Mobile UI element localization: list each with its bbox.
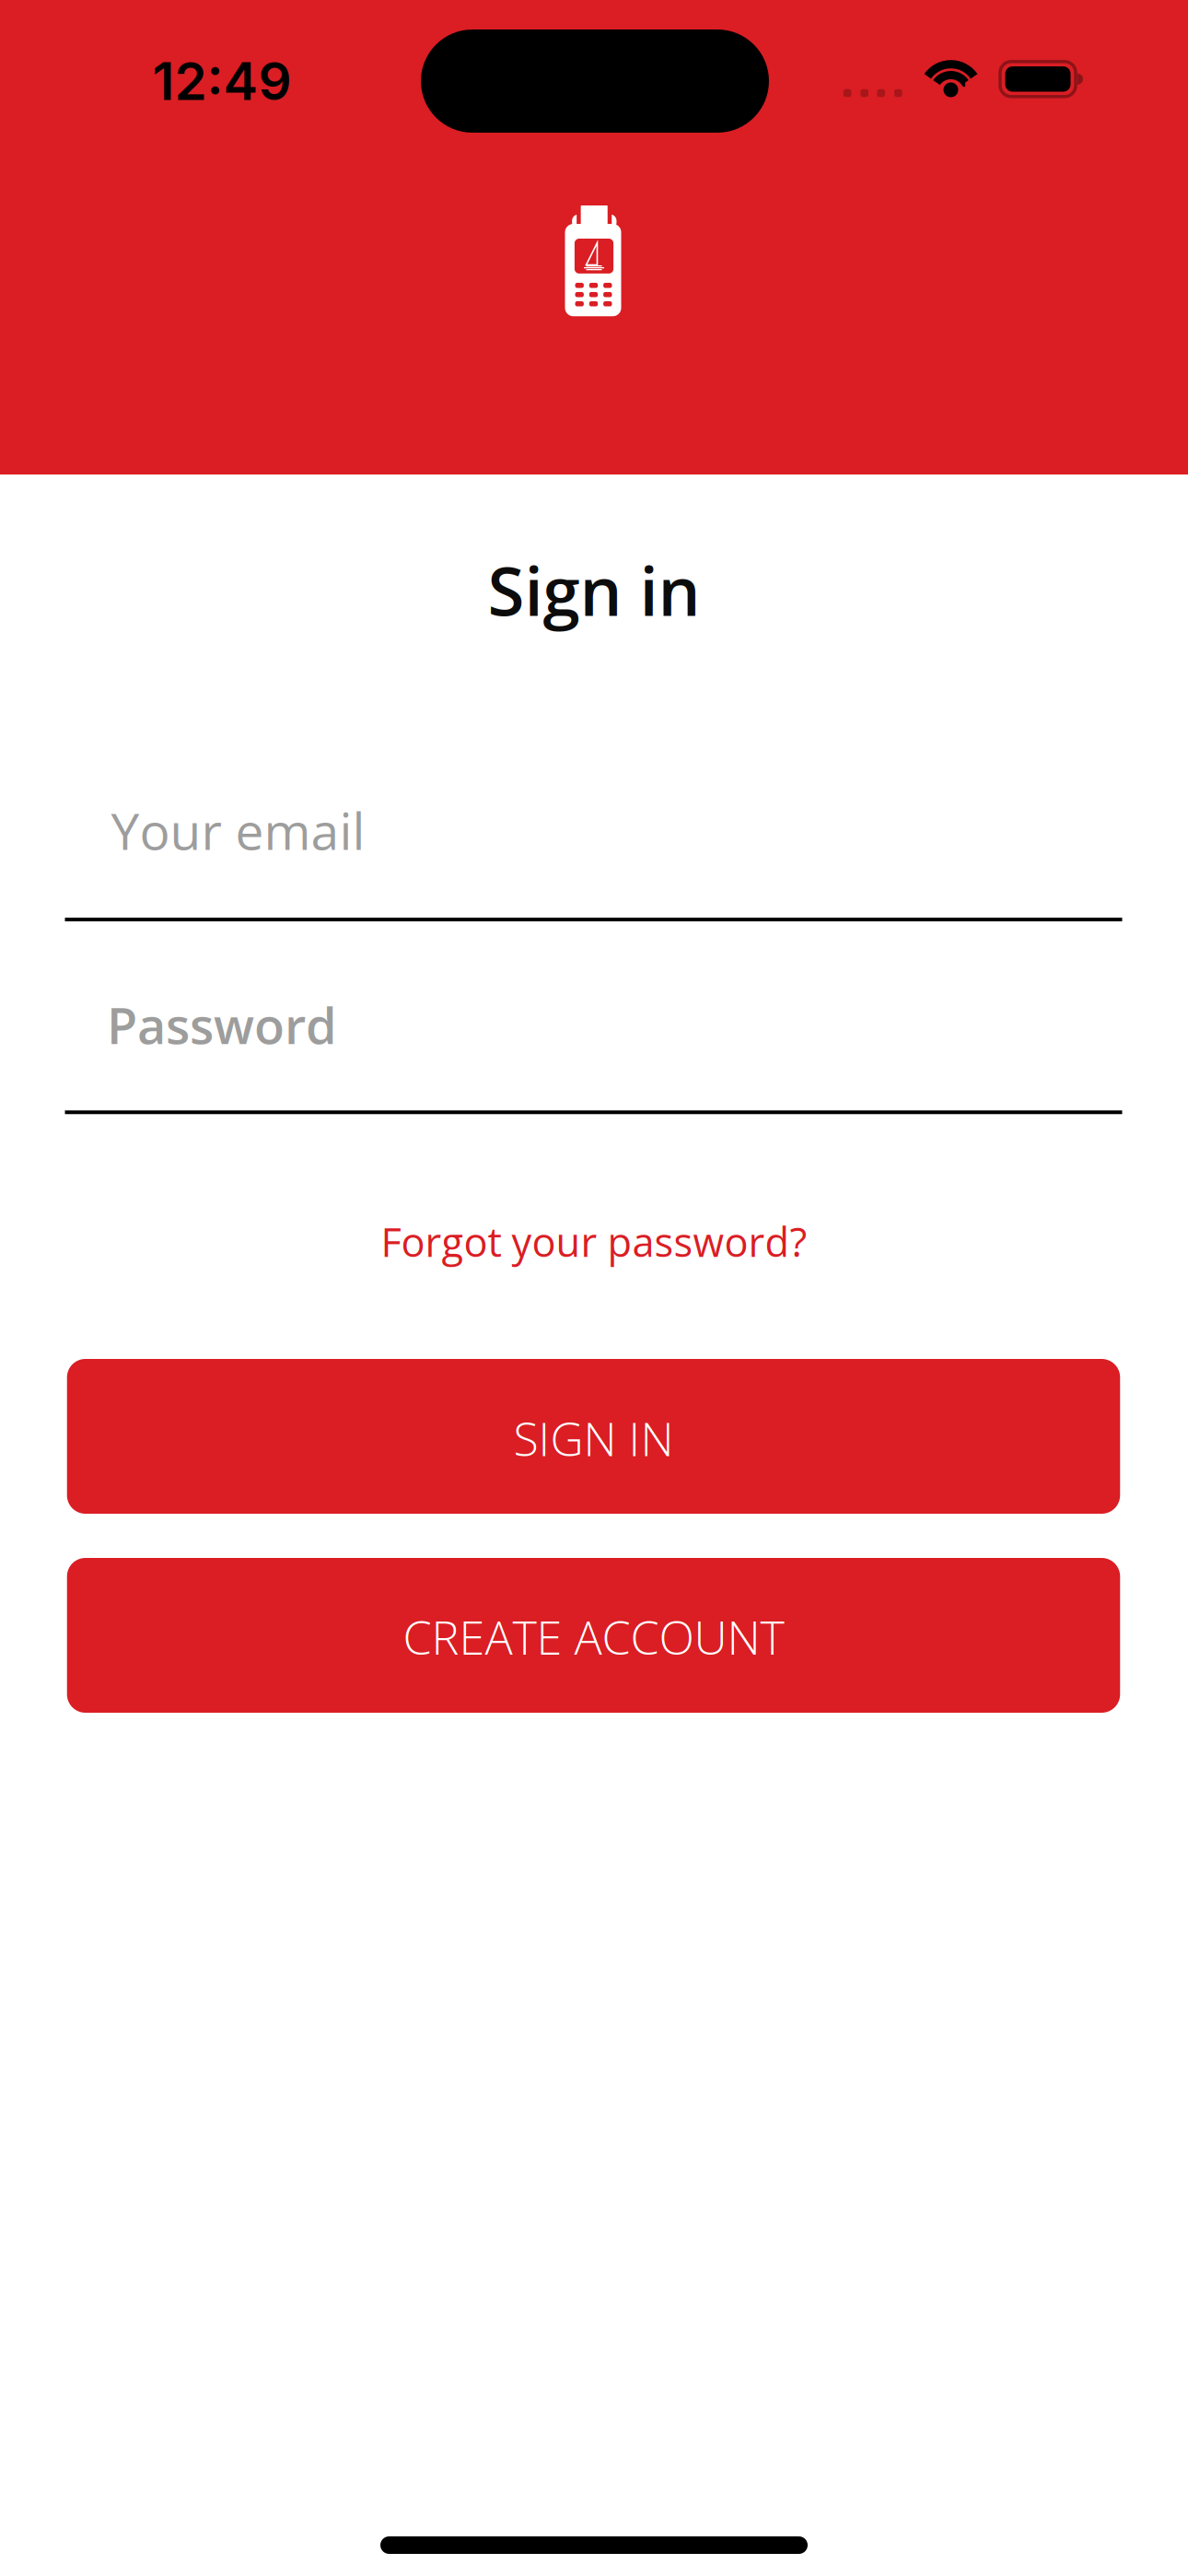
staticText: Your email	[111, 796, 365, 865]
staticText: Password	[107, 991, 337, 1059]
staticText: Forgot your password?	[381, 1214, 807, 1269]
button[interactable]: Password	[65, 991, 1122, 1114]
staticText: Sign in	[488, 544, 700, 635]
button[interactable]: CREATE ACCOUNT	[67, 1558, 1120, 1713]
staticText: CREATE ACCOUNT	[403, 1605, 784, 1668]
button[interactable]: SIGN IN	[67, 1359, 1120, 1514]
button[interactable]: Your email	[65, 796, 1122, 921]
staticText: 12:49	[152, 50, 291, 112]
button[interactable]: Forgot your password?	[381, 1214, 807, 1269]
staticText: SIGN IN	[513, 1407, 674, 1470]
